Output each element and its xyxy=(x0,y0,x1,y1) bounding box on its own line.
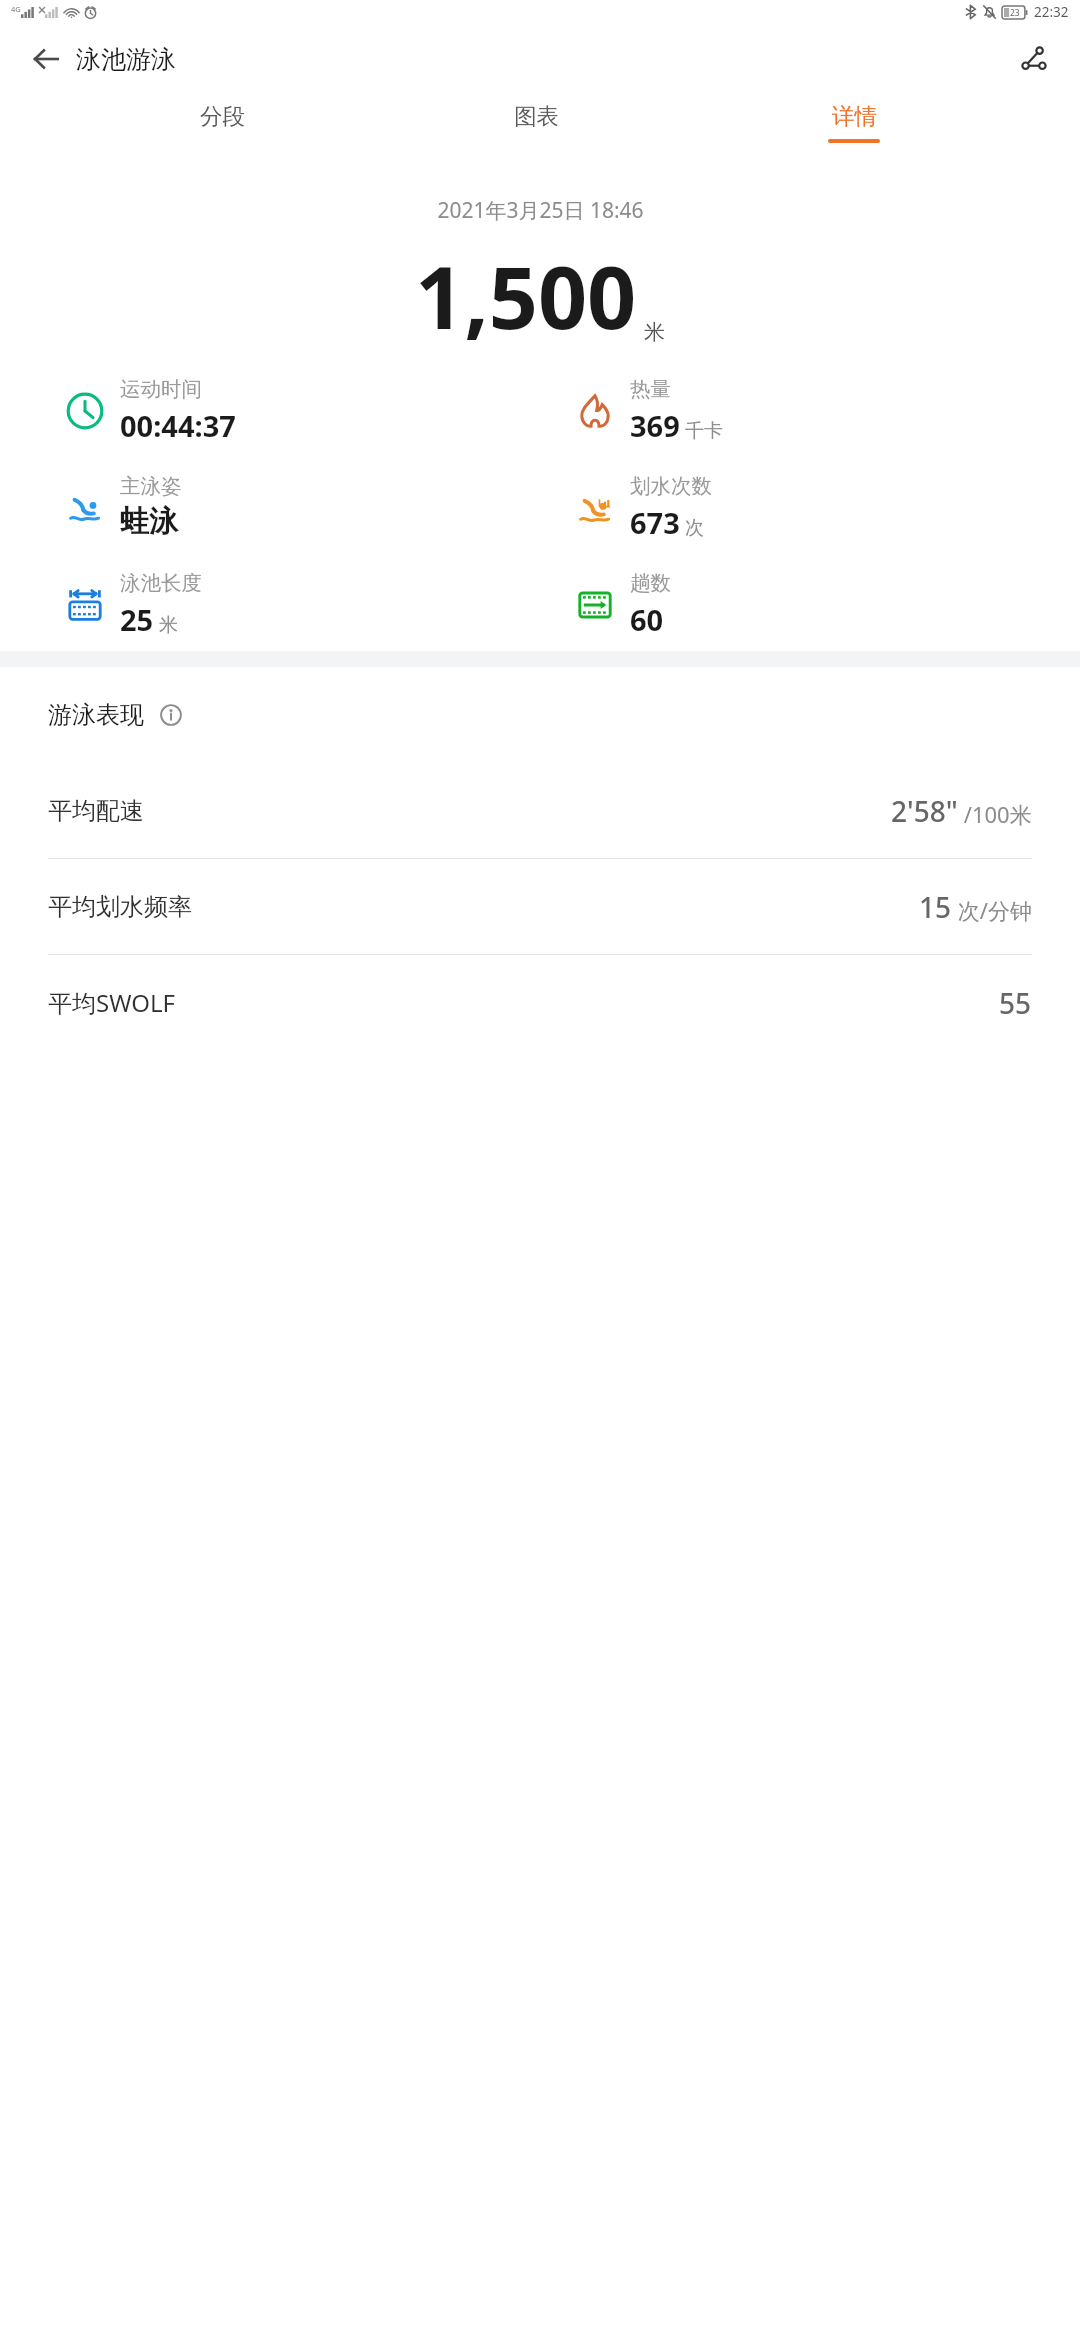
staticText: 369 xyxy=(630,406,680,445)
button[interactable]: 平均划水频率 xyxy=(0,859,1080,955)
staticText: 4G xyxy=(11,4,21,14)
staticText: 趟数 xyxy=(630,570,671,596)
staticText: 千卡 xyxy=(685,419,723,443)
button[interactable]: Back xyxy=(22,35,70,83)
button[interactable]: 平均配速 xyxy=(0,763,1080,859)
staticText: 详情 xyxy=(832,102,877,130)
staticText: 60 xyxy=(630,600,664,639)
staticText: 蛙泳 xyxy=(120,503,178,540)
staticText: 55 xyxy=(999,984,1032,1022)
staticText: 25 xyxy=(120,600,154,639)
staticText: 泳池游泳 xyxy=(76,44,176,75)
staticText: 1,500 xyxy=(415,237,637,354)
button[interactable]: Info xyxy=(154,698,188,732)
staticText: /100米 xyxy=(958,799,1032,829)
staticText: 平均配速 xyxy=(48,796,144,826)
staticText: 分段 xyxy=(200,102,245,130)
staticText: 15 xyxy=(919,888,952,926)
button[interactable]: 平均SWOLF xyxy=(0,955,1080,1050)
staticText: 运动时间 xyxy=(120,376,202,402)
staticText: 平均划水频率 xyxy=(48,892,192,922)
button[interactable]: Share xyxy=(1010,35,1058,83)
staticText: 泳池长度 xyxy=(120,570,202,596)
staticText: 2'58" xyxy=(891,792,958,830)
staticText: 图表 xyxy=(514,102,559,130)
staticText: 次/分钟 xyxy=(952,895,1032,925)
staticText: 划水次数 xyxy=(630,473,712,499)
staticText: 热量 xyxy=(630,376,671,402)
staticText: 22:32 xyxy=(1034,3,1069,21)
staticText: 2021年3月25日 18:46 xyxy=(437,196,644,225)
staticText: 00:44:37 xyxy=(120,406,236,445)
staticText: 米 xyxy=(644,319,665,345)
staticText: 主泳姿 xyxy=(120,473,182,499)
button[interactable]: 图表 xyxy=(504,94,569,147)
staticText: 平均SWOLF xyxy=(48,986,176,1019)
button[interactable]: 详情 xyxy=(818,94,890,151)
staticText: 米 xyxy=(159,613,178,637)
staticText: 23 xyxy=(1010,7,1020,19)
staticText: 673 xyxy=(630,503,680,542)
staticText: 次 xyxy=(685,516,704,540)
button[interactable]: 分段 xyxy=(190,94,255,147)
staticText: 游泳表现 xyxy=(48,700,144,730)
